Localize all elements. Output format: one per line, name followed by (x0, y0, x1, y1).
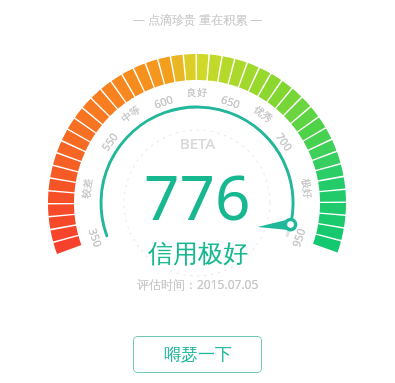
staticText: 776 (144, 154, 251, 238)
staticText: BETA (180, 133, 215, 153)
staticText: 评估时间：2015.07.05 (137, 276, 259, 292)
button[interactable]: 嘚瑟一下 (133, 336, 262, 373)
staticText: — 点滴珍贵 重在积累 — (133, 11, 263, 27)
staticText: 信用极好 (148, 238, 248, 269)
staticText: 嘚瑟一下 (164, 344, 232, 365)
